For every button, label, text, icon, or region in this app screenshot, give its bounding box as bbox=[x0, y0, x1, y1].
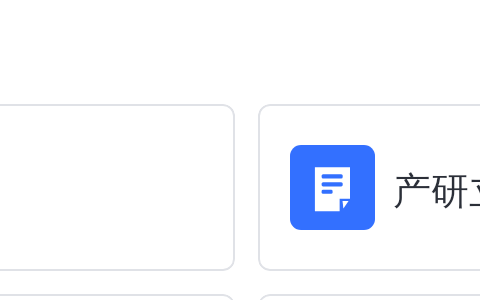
button[interactable]: Document bbox=[258, 294, 480, 300]
button[interactable]: Document bbox=[258, 104, 480, 271]
button[interactable]: Document bbox=[0, 104, 235, 271]
staticText: 产研立项 bbox=[393, 167, 480, 215]
button[interactable]: Document bbox=[0, 294, 235, 300]
other: Document bbox=[290, 145, 375, 230]
